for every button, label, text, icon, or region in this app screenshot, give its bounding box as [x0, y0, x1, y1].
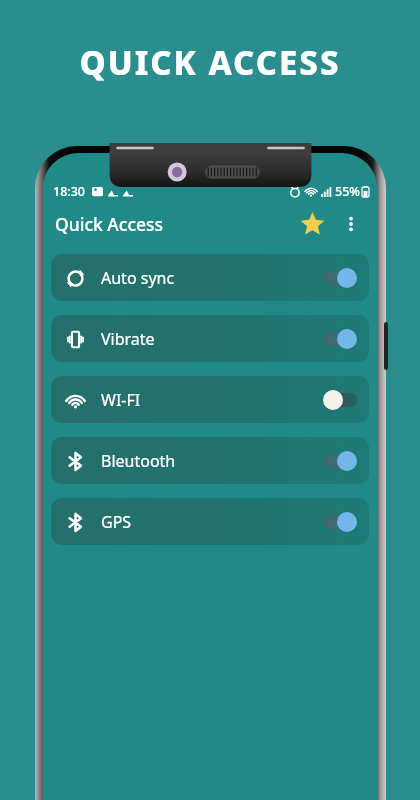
staticText: Auto sync — [101, 267, 175, 289]
button[interactable]: Auto sync — [51, 254, 369, 301]
staticText: WI-FI — [101, 389, 141, 411]
staticText: 55% — [335, 183, 360, 200]
button[interactable]: Vibrate — [51, 315, 369, 362]
staticText: 18:30 — [53, 183, 86, 200]
staticText: GPS — [101, 511, 132, 533]
button[interactable]: More options — [335, 208, 367, 240]
button[interactable]: GPS — [51, 498, 369, 545]
button[interactable]: Bleutooth — [51, 437, 369, 484]
button[interactable]: WI-FI — [51, 376, 369, 423]
button[interactable]: Favorite — [295, 207, 329, 241]
staticText: Vibrate — [101, 328, 155, 350]
staticText: Bleutooth — [101, 450, 176, 472]
staticText: Quick Access — [55, 212, 164, 236]
staticText: QUICK ACCESS — [79, 40, 341, 85]
